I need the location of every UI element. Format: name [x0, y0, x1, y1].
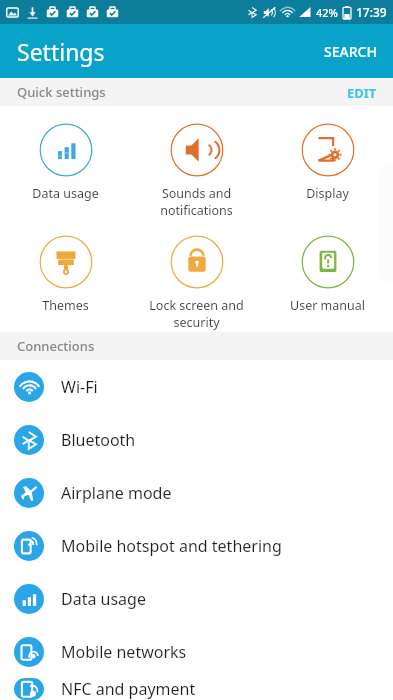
staticText: Sounds and notifications [160, 185, 233, 218]
button[interactable]: SEARCH [308, 30, 393, 73]
staticText: Display [306, 185, 349, 202]
staticText: SEARCH [324, 42, 377, 61]
staticText: Data usage [61, 588, 146, 610]
button[interactable]: Wi-Fi [0, 360, 393, 413]
staticText: 42% [316, 5, 338, 20]
button[interactable]: Mobile hotspot and tethering [0, 519, 393, 572]
button[interactable]: NFC and payment [0, 678, 393, 700]
staticText: Quick settings [17, 83, 106, 101]
staticText: Mobile networks [61, 641, 187, 663]
staticText: Themes [42, 297, 89, 314]
staticText: EDIT [347, 84, 377, 100]
button[interactable]: Themes [0, 232, 131, 316]
staticText: Mobile hotspot and tethering [61, 535, 282, 557]
staticText: Lock screen and security [149, 297, 244, 330]
staticText: User manual [290, 297, 365, 314]
staticText: Airplane mode [61, 482, 172, 504]
button[interactable]: EDIT [331, 78, 393, 106]
button[interactable]: User manual [262, 232, 393, 316]
button[interactable]: Bluetooth [0, 413, 393, 466]
staticText: Settings [17, 36, 105, 67]
button[interactable]: Sounds and notifications [131, 120, 262, 220]
staticText: Wi-Fi [61, 376, 98, 398]
staticText: Bluetooth [61, 429, 136, 451]
button[interactable]: Data usage [0, 120, 131, 204]
staticText: Data usage [32, 185, 99, 202]
button[interactable]: Airplane mode [0, 466, 393, 519]
button[interactable]: Data usage [0, 572, 393, 625]
staticText: Connections [17, 337, 95, 355]
staticText: 17:39 [356, 4, 387, 20]
button[interactable]: Mobile networks [0, 625, 393, 678]
button[interactable]: Display [262, 120, 393, 204]
staticText: NFC and payment [61, 678, 196, 700]
button[interactable]: Lock screen and security [131, 232, 262, 332]
